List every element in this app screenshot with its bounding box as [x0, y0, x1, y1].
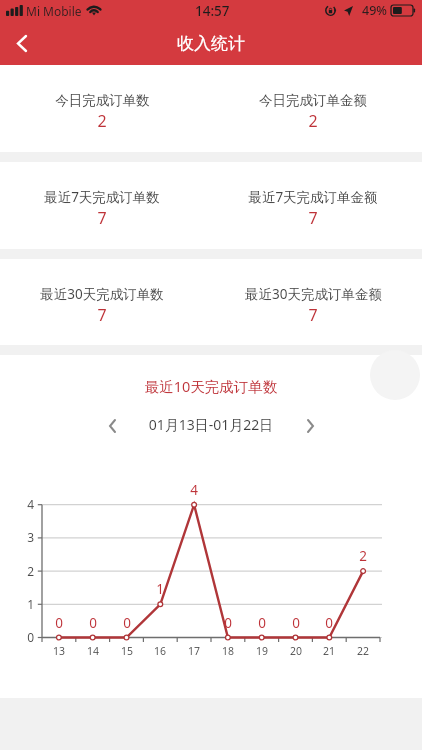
staticText: 7: [97, 207, 107, 229]
staticText: 2: [351, 547, 375, 565]
button[interactable]: 今日完成订单数: [0, 65, 211, 152]
staticText: 2: [16, 563, 34, 579]
button[interactable]: Quick action: [370, 350, 420, 400]
staticText: 1: [16, 596, 34, 612]
staticText: 收入统计: [177, 33, 245, 54]
staticText: 最近30天完成订单数: [40, 285, 164, 303]
staticText: 最近10天完成订单数: [0, 376, 422, 396]
button[interactable]: Next period: [294, 410, 326, 442]
staticText: 1: [148, 580, 172, 598]
staticText: 18: [216, 644, 240, 658]
staticText: 20: [284, 644, 308, 658]
staticText: 19: [250, 644, 274, 658]
staticText: 4: [182, 481, 206, 499]
staticText: 7: [308, 207, 318, 229]
staticText: 最近30天完成订单金额: [245, 285, 382, 303]
staticText: 2: [308, 110, 318, 132]
staticText: 7: [97, 304, 107, 326]
staticText: 14: [81, 644, 105, 658]
button[interactable]: 今日完成订单金额: [211, 65, 422, 152]
staticText: 3: [16, 529, 34, 545]
button[interactable]: 最近7天完成订单金额: [211, 162, 422, 249]
staticText: 0: [115, 614, 139, 632]
button[interactable]: 最近7天完成订单数: [0, 162, 211, 249]
staticText: 16: [148, 644, 172, 658]
button[interactable]: 最近30天完成订单金额: [211, 259, 422, 345]
staticText: 0: [16, 629, 34, 645]
staticText: 0: [81, 614, 105, 632]
button[interactable]: Previous period: [96, 410, 128, 442]
button[interactable]: 最近30天完成订单数: [0, 259, 211, 345]
staticText: 最近7天完成订单数: [44, 188, 160, 206]
staticText: 最近7天完成订单金额: [248, 188, 378, 206]
staticText: 0: [250, 614, 274, 632]
staticText: 21: [317, 644, 341, 658]
staticText: Mi Mobile: [26, 3, 82, 19]
staticText: 0: [284, 614, 308, 632]
staticText: 01月13日-01月22日: [0, 415, 422, 434]
staticText: 4: [16, 496, 34, 512]
staticText: 今日完成订单数: [55, 92, 150, 109]
staticText: 7: [308, 304, 318, 326]
staticText: 14:57: [195, 2, 230, 20]
staticText: 0: [216, 614, 240, 632]
staticText: 13: [47, 644, 71, 658]
staticText: 0: [317, 614, 341, 632]
staticText: 17: [182, 644, 206, 658]
staticText: 15: [115, 644, 139, 658]
staticText: 2: [97, 110, 107, 132]
staticText: 49%: [362, 2, 387, 19]
staticText: 0: [47, 614, 71, 632]
staticText: 22: [351, 644, 375, 658]
staticText: 今日完成订单金额: [259, 92, 367, 109]
button[interactable]: Back: [0, 21, 44, 65]
